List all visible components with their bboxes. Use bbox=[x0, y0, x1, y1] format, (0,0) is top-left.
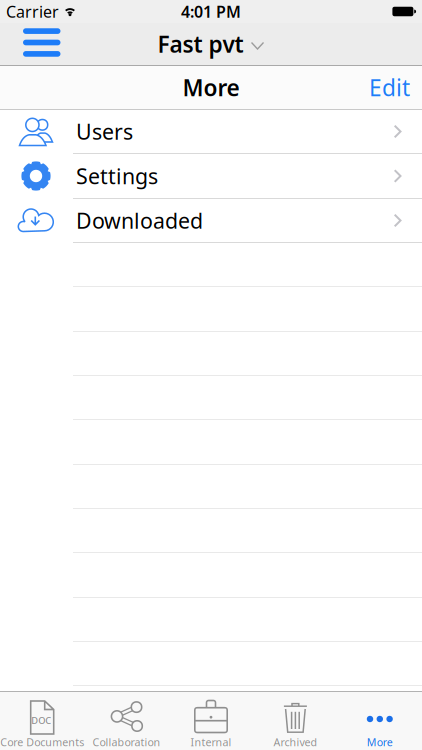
staticText: More bbox=[367, 735, 393, 749]
button[interactable]: Menu bbox=[0, 30, 60, 58]
button[interactable]: Downloaded bbox=[0, 199, 422, 243]
button[interactable]: Users bbox=[0, 110, 422, 154]
staticText: DOC bbox=[31, 714, 51, 727]
staticText: 4:01 PM bbox=[181, 1, 241, 22]
staticText: Edit bbox=[369, 72, 410, 102]
button[interactable]: Edit bbox=[369, 72, 422, 102]
staticText: Collaboration bbox=[93, 735, 161, 749]
button[interactable]: Collaboration bbox=[84, 692, 169, 750]
button[interactable]: Internal bbox=[169, 692, 253, 750]
staticText: Carrier bbox=[6, 1, 59, 22]
staticText: Downloaded bbox=[76, 206, 203, 235]
staticText: Fast pvt bbox=[157, 29, 243, 59]
staticText: More bbox=[182, 72, 239, 102]
staticText: Users bbox=[76, 117, 133, 146]
button[interactable]: More bbox=[338, 692, 422, 750]
staticText: Core Documents bbox=[0, 735, 84, 749]
button[interactable]: DOC bbox=[0, 692, 84, 750]
button[interactable]: Fast pvt bbox=[157, 29, 264, 59]
button[interactable]: Archived bbox=[253, 692, 338, 750]
staticText: Archived bbox=[273, 735, 317, 749]
staticText: Settings bbox=[76, 162, 158, 190]
button[interactable]: Settings bbox=[0, 154, 422, 199]
staticText: Internal bbox=[190, 735, 231, 749]
